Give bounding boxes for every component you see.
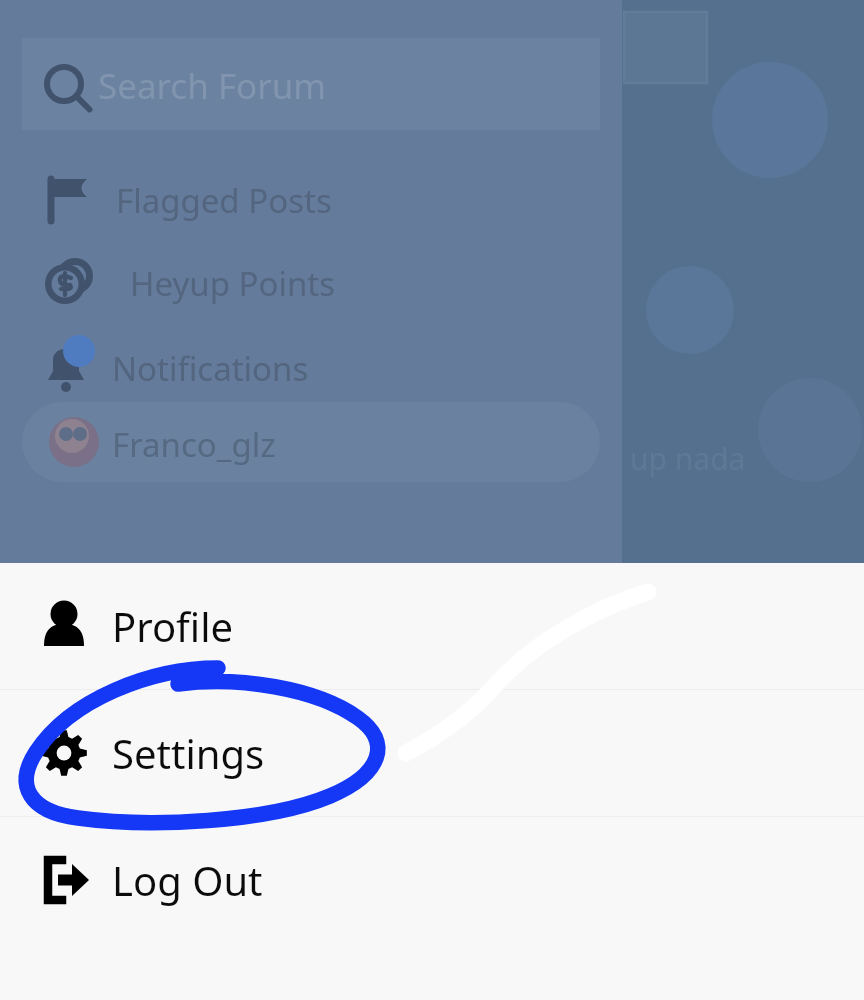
staticText: Flagged Posts (116, 178, 332, 223)
staticText: Notifications (112, 346, 309, 391)
button[interactable]: Log Out (0, 817, 864, 943)
button[interactable]: Franco_glz (22, 402, 600, 482)
button[interactable]: Profile (0, 563, 864, 689)
staticText: Profile (112, 599, 234, 653)
staticText: Settings (112, 726, 265, 780)
staticText: Search Forum (98, 62, 327, 110)
button[interactable]: Search Forum (22, 38, 600, 130)
button[interactable]: Notifications (0, 328, 622, 406)
button[interactable]: Heyup Points (0, 243, 622, 321)
button[interactable]: Flagged Posts (0, 160, 622, 238)
staticText: Franco_glz (112, 422, 276, 467)
staticText: Heyup Points (130, 261, 336, 306)
button[interactable]: Settings (0, 690, 864, 816)
staticText: Log Out (112, 853, 263, 907)
